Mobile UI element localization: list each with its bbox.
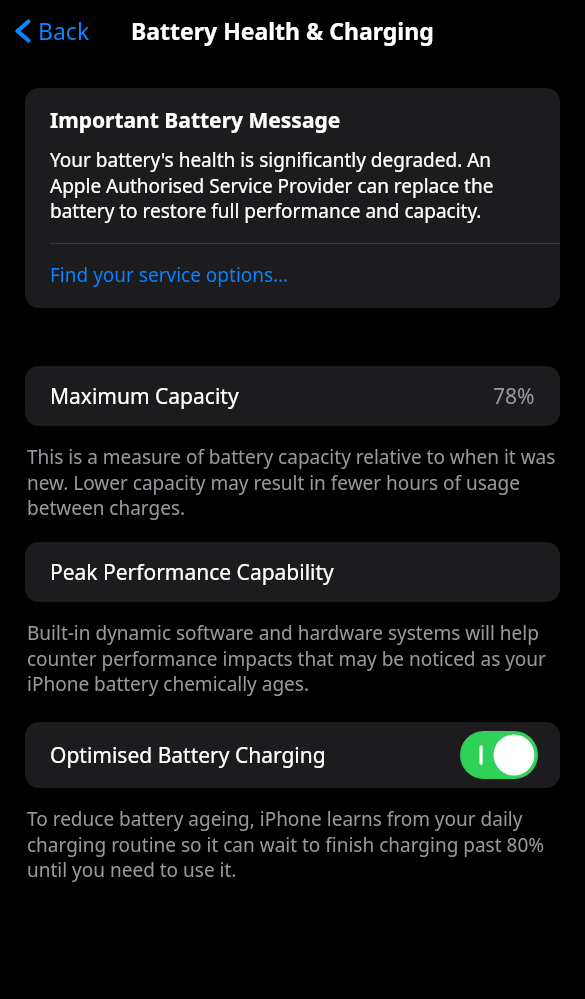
staticText: 78% (493, 382, 535, 411)
staticText: Find your service options… (50, 262, 289, 288)
staticText: Back (38, 15, 90, 46)
staticText: Peak Performance Capability (50, 558, 334, 587)
staticText: Important Battery Message (50, 106, 341, 135)
staticText: This is a measure of battery capacity re… (27, 444, 558, 520)
staticText: To reduce battery ageing, iPhone learns … (27, 806, 558, 882)
button[interactable]: Peak Performance Capability (25, 542, 560, 602)
staticText: Optimised Battery Charging (50, 741, 460, 770)
staticText: Battery Health & Charging (131, 15, 434, 46)
button[interactable]: Maximum Capacity (25, 366, 560, 426)
button[interactable]: Optimised Battery Charging toggle, on (460, 731, 538, 779)
button[interactable]: Back (8, 11, 96, 50)
staticText: Built-in dynamic software and hardware s… (27, 620, 558, 696)
staticText: Your battery's health is significantly d… (50, 147, 540, 223)
staticText: Maximum Capacity (50, 382, 493, 411)
button[interactable]: Find your service options… (25, 244, 560, 308)
